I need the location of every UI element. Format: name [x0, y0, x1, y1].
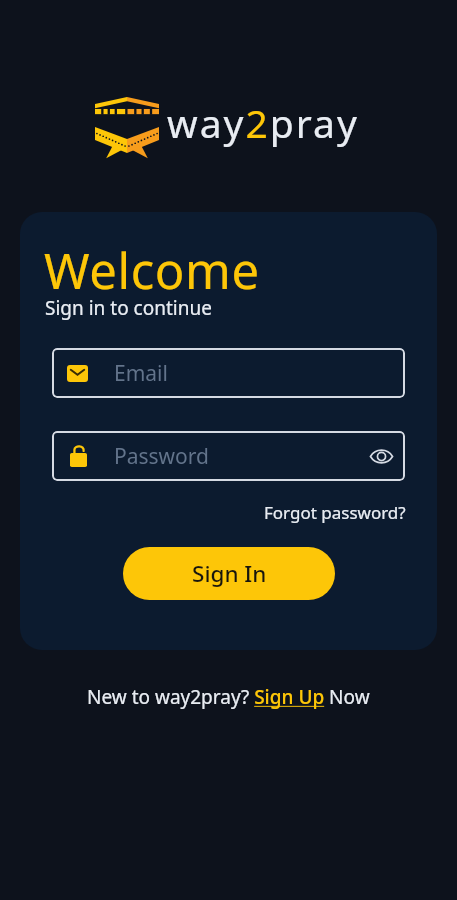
button[interactable]: Email [52, 348, 405, 398]
staticText: Password [114, 442, 209, 471]
staticText: Sign in to continue [45, 295, 212, 321]
staticText: way2pray [167, 96, 359, 149]
button[interactable]: Sign In [123, 547, 335, 600]
button[interactable]: Password [52, 431, 405, 481]
button[interactable]: Forgot password? [262, 498, 408, 527]
button[interactable]: Show password [365, 440, 397, 472]
staticText: Email [114, 359, 168, 388]
button[interactable]: New to way2pray? Sign Up Now [83, 680, 374, 714]
staticText: Sign In [192, 558, 267, 589]
staticText: Welcome [44, 237, 260, 304]
